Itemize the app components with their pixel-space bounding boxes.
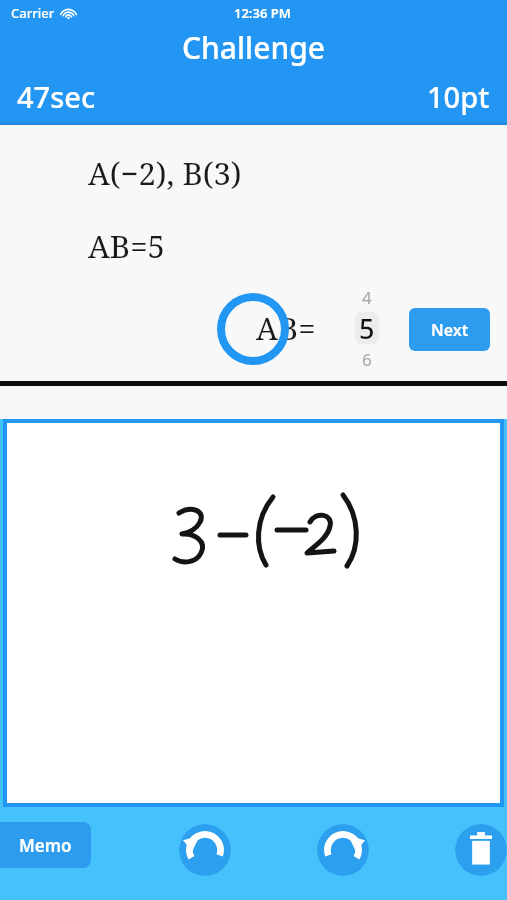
button[interactable]: Undo — [179, 824, 231, 876]
button[interactable]: Delete — [455, 824, 507, 876]
button[interactable]: Next — [409, 308, 490, 351]
staticText: Memo — [19, 834, 72, 857]
staticText: Carrier — [11, 4, 55, 22]
button[interactable]: Memo — [0, 822, 91, 868]
button[interactable]: 4 — [351, 286, 383, 370]
staticText: AB=5 — [88, 225, 165, 267]
staticText: AB= — [256, 307, 316, 349]
staticText: Challenge — [182, 27, 326, 68]
button[interactable]: Redo — [317, 824, 369, 876]
staticText: A(−2), B(3) — [88, 152, 242, 194]
staticText: Next — [431, 319, 469, 341]
staticText: 12:36 PM — [234, 4, 291, 22]
staticText: 47sec — [17, 77, 96, 116]
staticText: 4 — [362, 286, 372, 309]
button[interactable] — [7, 423, 500, 803]
staticText: 10pt — [427, 77, 490, 116]
staticText: 5 — [359, 310, 375, 347]
staticText: 6 — [362, 348, 372, 370]
other: Correct answer — [217, 293, 289, 365]
